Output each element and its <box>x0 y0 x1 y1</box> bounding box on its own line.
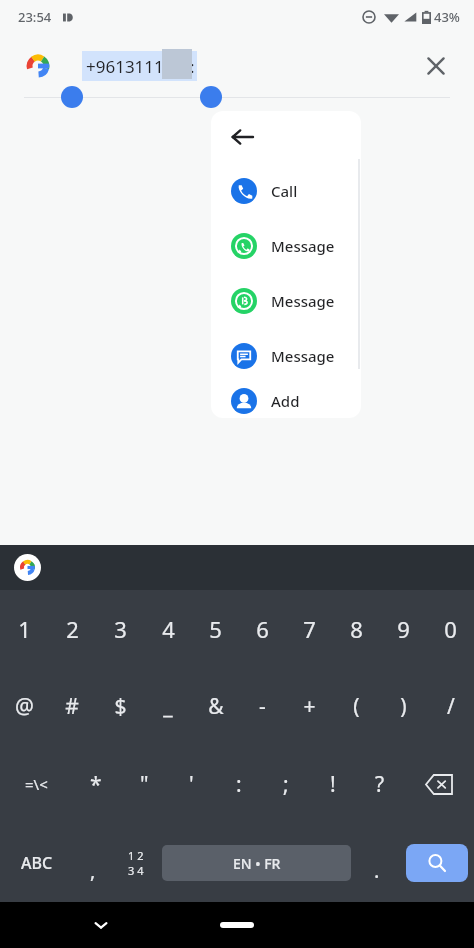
button[interactable]: @ <box>0 668 48 744</box>
staticText: EN • FR <box>233 854 281 873</box>
button[interactable]: 6 <box>239 590 286 668</box>
staticText: 0 <box>444 614 457 644</box>
staticText: Call <box>271 181 298 201</box>
button[interactable]: 3 <box>96 590 144 668</box>
staticText: 8 <box>350 614 363 644</box>
staticText: " <box>140 770 149 799</box>
staticText: @ <box>15 692 34 721</box>
staticText: 1 <box>18 614 31 644</box>
button[interactable]: Clear <box>416 46 456 86</box>
staticText: ? <box>375 770 385 799</box>
staticText: * <box>90 770 102 799</box>
button[interactable]: 0 <box>427 590 474 668</box>
button[interactable]: Call <box>211 163 361 218</box>
staticText: ! <box>330 770 336 799</box>
button[interactable]: Message <box>211 218 361 273</box>
button[interactable]: 2 <box>48 590 96 668</box>
staticText: . <box>374 857 380 884</box>
button[interactable]: EN • FR <box>162 845 351 881</box>
button[interactable]: Hide keyboard <box>84 908 118 942</box>
button[interactable]: Search <box>406 844 468 882</box>
staticText: : <box>236 770 242 799</box>
button[interactable]: 1 <box>0 590 48 668</box>
button[interactable]: 8 <box>333 590 380 668</box>
button[interactable]: ) <box>380 668 427 744</box>
staticText: 7 <box>303 614 316 644</box>
staticText: ( <box>353 692 360 721</box>
button[interactable]: # <box>48 668 96 744</box>
staticText: ) <box>400 692 407 721</box>
button[interactable]: + <box>286 668 333 744</box>
staticText: + <box>303 692 316 721</box>
staticText: , <box>90 857 96 884</box>
staticText: Message <box>271 236 335 256</box>
button[interactable]: , <box>73 824 113 902</box>
staticText: 43% <box>434 8 460 26</box>
button[interactable]: Message <box>211 328 361 383</box>
staticText: 5 <box>209 614 222 644</box>
button[interactable]: Numbers <box>113 824 159 902</box>
staticText: & <box>208 692 224 721</box>
staticText: 6 <box>256 614 269 644</box>
button[interactable]: Backspace <box>403 744 474 824</box>
staticText: ' <box>189 770 194 799</box>
staticText: 3 <box>114 614 127 644</box>
staticText: # <box>65 692 79 721</box>
button[interactable]: =\< <box>0 744 72 824</box>
staticText: _ <box>163 692 173 721</box>
button[interactable]: ABC <box>0 824 73 902</box>
button[interactable]: 5 <box>192 590 239 668</box>
button[interactable]: . <box>354 824 400 902</box>
staticText: - <box>259 692 266 721</box>
button[interactable]: $ <box>96 668 144 744</box>
button[interactable]: ? <box>356 744 403 824</box>
other: Google <box>25 53 51 79</box>
button[interactable]: ! <box>309 744 356 824</box>
button[interactable]: 4 <box>144 590 192 668</box>
staticText: 1 2 <box>128 848 144 863</box>
staticText: 23:54 <box>18 8 52 26</box>
button[interactable]: 9 <box>380 590 427 668</box>
button[interactable]: * <box>72 744 120 824</box>
button[interactable]: Back <box>211 111 361 163</box>
staticText: $ <box>114 692 127 721</box>
button[interactable]: ( <box>333 668 380 744</box>
staticText: 9 <box>397 614 410 644</box>
button[interactable]: 7 <box>286 590 333 668</box>
button[interactable]: _ <box>144 668 192 744</box>
button[interactable]: / <box>427 668 474 744</box>
staticText: +9613111 <box>86 55 164 78</box>
staticText: ABC <box>21 852 53 874</box>
button[interactable]: ; <box>262 744 309 824</box>
button[interactable]: Google <box>14 554 41 581</box>
button[interactable]: Message <box>211 273 361 328</box>
button[interactable]: ' <box>168 744 215 824</box>
staticText: 4 <box>162 614 175 644</box>
button[interactable]: - <box>239 668 286 744</box>
staticText: 2 <box>66 614 79 644</box>
staticText: Message <box>271 346 335 366</box>
button[interactable]: Add <box>211 383 361 418</box>
button[interactable]: : <box>215 744 262 824</box>
staticText: / <box>447 692 455 721</box>
staticText: ; <box>283 770 289 799</box>
staticText: Message <box>271 291 335 311</box>
staticText: =\< <box>25 774 48 794</box>
button[interactable]: " <box>120 744 168 824</box>
staticText: 3 4 <box>128 863 144 878</box>
staticText: : <box>190 55 195 78</box>
staticText: Add <box>271 391 300 411</box>
button[interactable]: & <box>192 668 239 744</box>
